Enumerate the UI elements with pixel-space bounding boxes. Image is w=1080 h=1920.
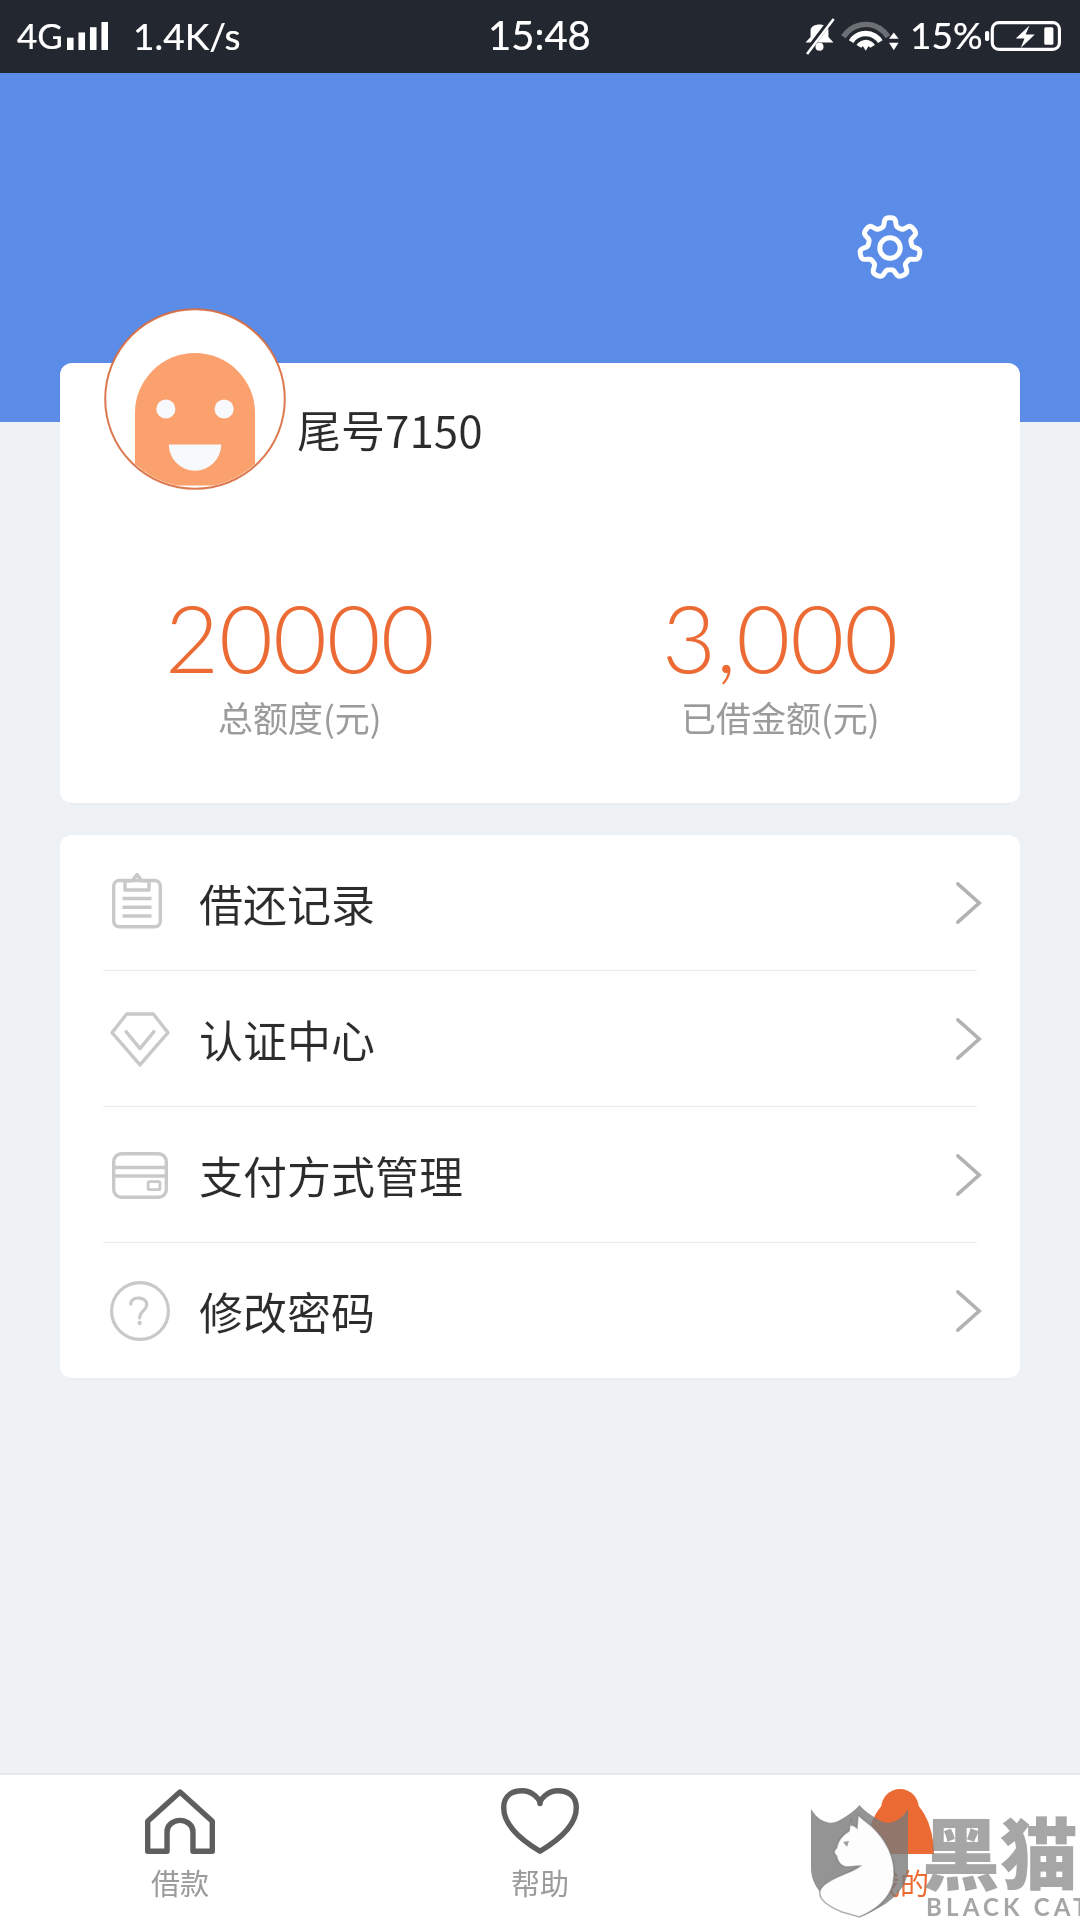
button[interactable]: 我的 xyxy=(720,1773,1080,1920)
button[interactable]: 修改密码 xyxy=(60,1243,1020,1378)
staticText: 尾号7150 xyxy=(297,397,483,461)
staticText: 20000 xyxy=(165,581,435,693)
staticText: 修改密码 xyxy=(199,1279,375,1343)
staticText: 15:48 xyxy=(488,11,591,59)
staticText: 15% xyxy=(910,12,983,56)
staticText: BLACK CAT xyxy=(926,1892,1080,1920)
button[interactable]: Settings xyxy=(840,198,940,298)
staticText: 借还记录 xyxy=(199,871,375,935)
staticText: 我的 xyxy=(871,1861,930,1903)
button[interactable]: 借款 xyxy=(0,1773,360,1920)
staticText: 借款 xyxy=(151,1861,210,1903)
staticText: 1.4K/s xyxy=(133,13,241,57)
staticText: 帮助 xyxy=(511,1861,570,1903)
button[interactable]: 借还记录 xyxy=(60,835,1020,970)
staticText: 认证中心 xyxy=(199,1007,375,1071)
button[interactable]: Profile avatar xyxy=(104,308,286,490)
button[interactable]: 支付方式管理 xyxy=(60,1107,1020,1242)
staticText: 黑猫 xyxy=(922,1794,1079,1907)
staticText: 已借金额(元) xyxy=(681,691,880,742)
button[interactable]: 认证中心 xyxy=(60,971,1020,1106)
staticText: 3,000 xyxy=(662,581,899,693)
button[interactable]: 帮助 xyxy=(360,1773,720,1920)
staticText: 4G xyxy=(17,14,63,56)
staticText: 总额度(元) xyxy=(218,691,382,742)
staticText: 支付方式管理 xyxy=(199,1143,463,1207)
